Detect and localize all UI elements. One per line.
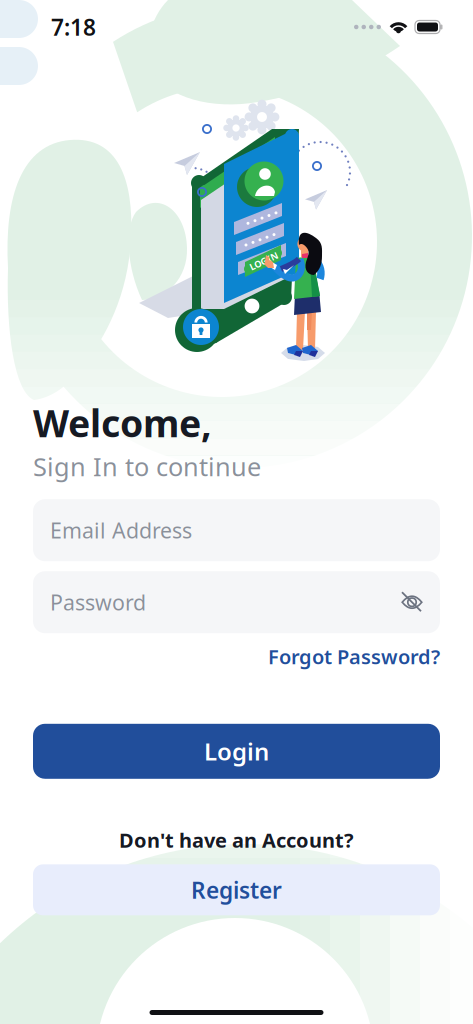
- staticText: Forgot Password?: [268, 643, 440, 670]
- staticText: Email Address: [50, 516, 192, 544]
- staticText: Password: [50, 588, 146, 616]
- staticText: Sign In to continue: [33, 450, 261, 483]
- staticText: Welcome,: [33, 398, 212, 448]
- staticText: 7:18: [51, 12, 96, 42]
- button[interactable]: Password: [33, 571, 440, 633]
- button[interactable]: Register: [33, 864, 440, 915]
- button[interactable]: Email Address: [33, 499, 440, 561]
- button[interactable]: Login: [33, 724, 440, 779]
- staticText: LOGIN: [248, 255, 279, 267]
- staticText: Don't have an Account?: [119, 827, 354, 853]
- staticText: Register: [191, 875, 282, 905]
- staticText: Login: [204, 735, 269, 767]
- button[interactable]: Forgot Password?: [33, 643, 440, 670]
